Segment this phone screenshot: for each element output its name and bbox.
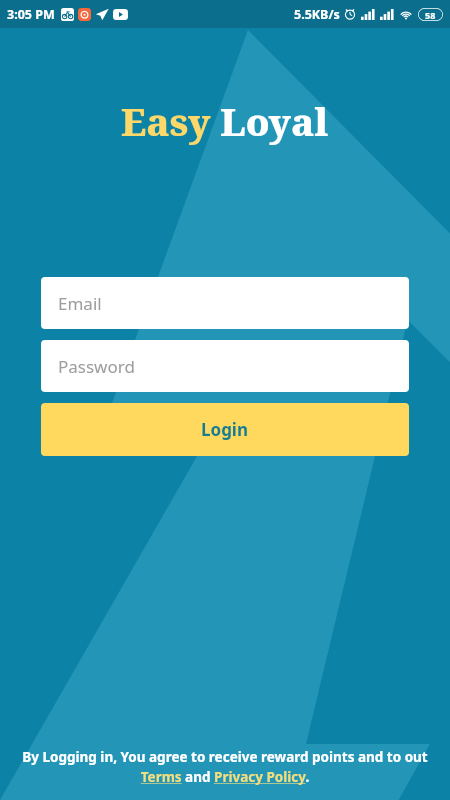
staticText: By Logging in, You agree to receive rewa… — [18, 748, 432, 786]
button[interactable]: By Logging in, You agree to receive rewa… — [18, 748, 432, 786]
staticText: 3:05 PM — [7, 6, 55, 23]
staticText: Easy Loyal — [121, 95, 329, 147]
staticText: Login — [201, 418, 249, 441]
button[interactable]: Email — [41, 277, 409, 329]
button[interactable]: Password — [41, 340, 409, 392]
staticText: 5.5KB/s — [294, 6, 340, 23]
button[interactable]: Login — [41, 403, 409, 456]
staticText: Email — [58, 292, 102, 315]
staticText: Password — [58, 355, 135, 378]
staticText: 58 — [425, 9, 436, 21]
